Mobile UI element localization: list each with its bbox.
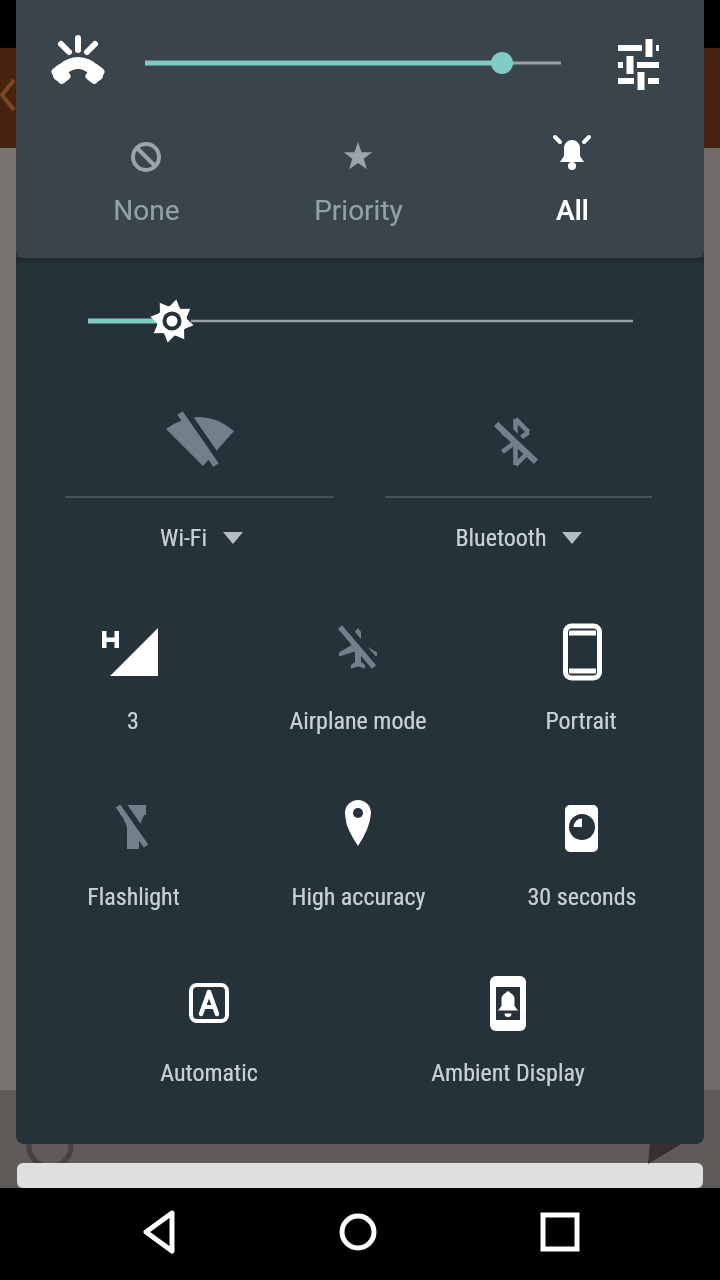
staticText: Portrait	[545, 707, 617, 735]
staticText: 30 seconds	[527, 883, 637, 911]
staticText: 3	[127, 707, 139, 735]
staticText: Airplane mode	[289, 707, 427, 735]
button[interactable]	[33, 615, 233, 735]
staticText: Automatic	[160, 1059, 258, 1087]
button[interactable]	[130, 36, 570, 92]
button[interactable]	[258, 791, 458, 911]
button[interactable]	[33, 791, 233, 911]
button[interactable]	[330, 130, 386, 240]
button[interactable]	[610, 36, 666, 92]
staticText: Wi-Fi	[160, 524, 207, 552]
button[interactable]	[330, 1205, 386, 1261]
staticText: Bluetooth	[455, 524, 547, 552]
button[interactable]	[80, 290, 640, 350]
staticText: None	[113, 194, 180, 227]
button[interactable]	[132, 1205, 188, 1261]
button[interactable]	[532, 1205, 588, 1261]
staticText: High accuracy	[291, 883, 426, 911]
staticText: Ambient Display	[431, 1059, 585, 1087]
button[interactable]	[482, 791, 682, 911]
button[interactable]	[118, 130, 174, 240]
button[interactable]	[65, 410, 335, 560]
staticText: Flashlight	[87, 883, 180, 911]
button[interactable]	[109, 967, 309, 1087]
staticText: Priority	[314, 194, 403, 227]
button[interactable]	[544, 130, 600, 240]
button[interactable]	[382, 410, 652, 560]
button[interactable]	[408, 967, 608, 1087]
staticText: All	[556, 194, 589, 227]
button[interactable]	[258, 615, 458, 735]
button[interactable]	[482, 615, 682, 735]
